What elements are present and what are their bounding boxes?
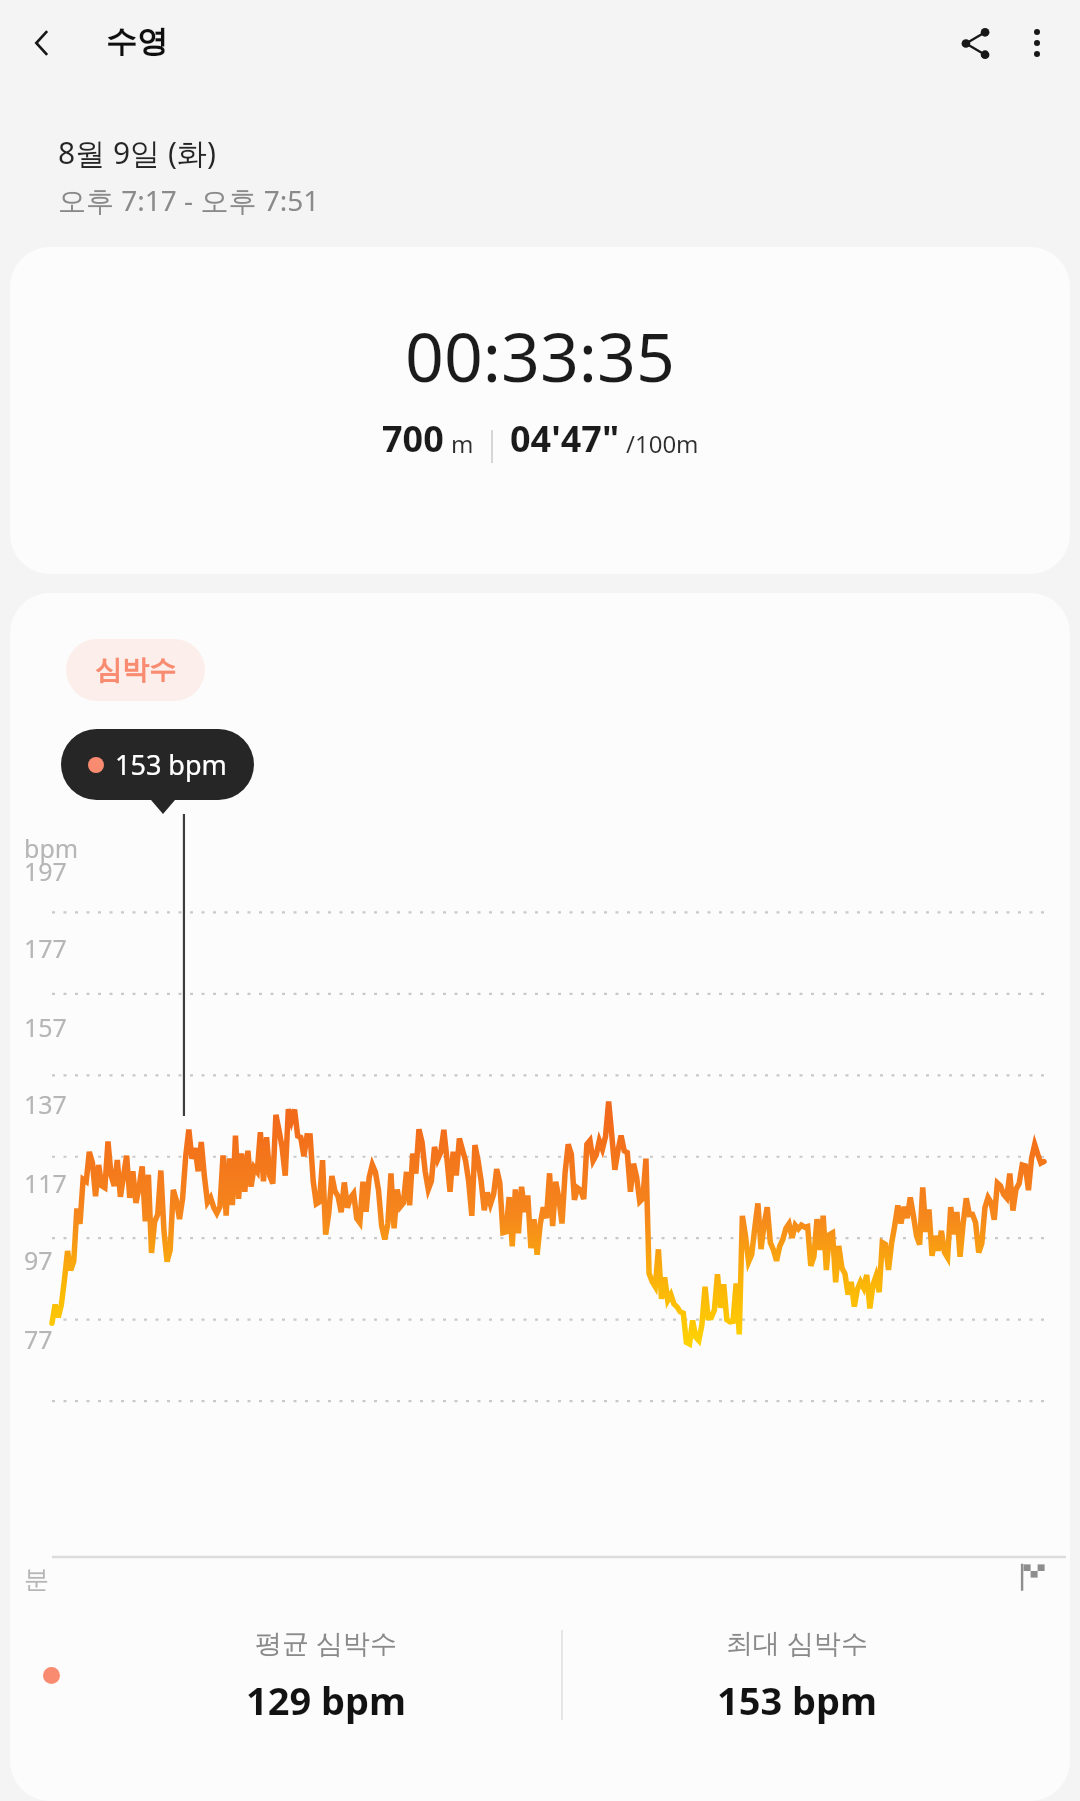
staticText: 04'47" <box>510 414 620 463</box>
staticText: 129 bpm <box>246 1674 407 1726</box>
staticText: 97 <box>24 1243 53 1277</box>
staticText: 평균 심박수 <box>255 1624 398 1661</box>
button[interactable]: 평균 심박수 <box>92 1624 561 1726</box>
staticText: 177 <box>24 931 67 965</box>
staticText: 117 <box>24 1166 67 1200</box>
staticText: 137 <box>24 1087 67 1121</box>
staticText: 157 <box>24 1010 67 1044</box>
button[interactable]: Back <box>14 14 72 72</box>
staticText: 700 <box>382 414 444 463</box>
staticText: 오후 7:17 - 오후 7:51 <box>58 181 320 219</box>
button[interactable]: Share <box>944 12 1006 74</box>
staticText: bpm <box>24 831 79 865</box>
button[interactable]: 00:33:35 <box>10 247 1070 574</box>
staticText: m <box>451 427 474 460</box>
staticText: 153 bpm <box>115 746 227 783</box>
staticText: 수영 <box>106 22 168 61</box>
staticText: /100m <box>626 427 699 460</box>
staticText: 77 <box>24 1322 53 1356</box>
button[interactable]: More options <box>1006 12 1068 74</box>
staticText: 최대 심박수 <box>726 1624 869 1661</box>
button[interactable]: 최대 심박수 <box>563 1624 1032 1726</box>
staticText: 00:33:35 <box>405 309 675 402</box>
staticText: 197 <box>24 854 67 888</box>
button[interactable]: 심박수 <box>66 639 205 701</box>
staticText: 심박수 <box>95 653 176 687</box>
staticText: 8월 9일 (화) <box>58 132 216 173</box>
staticText: 153 bpm <box>717 1674 878 1726</box>
staticText: 분 <box>24 1564 49 1595</box>
button[interactable]: Finish lap marker <box>1016 1561 1048 1593</box>
